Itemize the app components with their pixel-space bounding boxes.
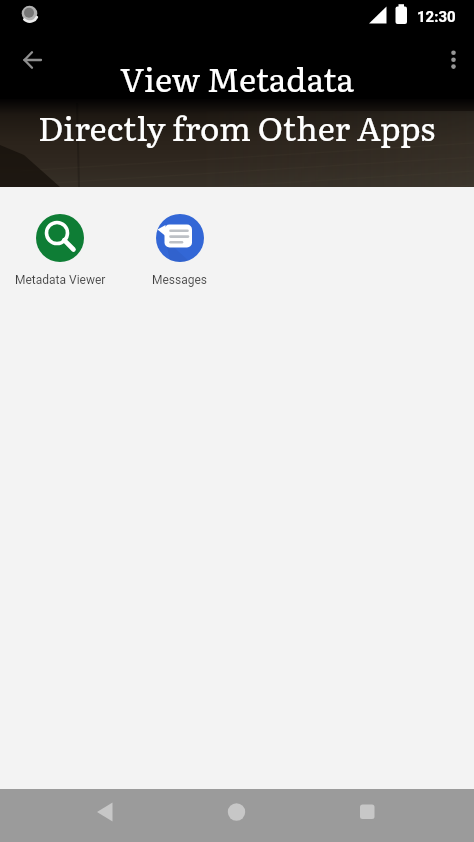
button[interactable] <box>79 789 132 842</box>
button[interactable] <box>342 789 395 842</box>
staticText: Directly from Other Apps <box>38 102 436 151</box>
staticText: Messages <box>152 273 208 287</box>
button[interactable] <box>430 33 474 77</box>
button[interactable]: Metadata Viewer <box>1 214 119 287</box>
button[interactable] <box>0 33 48 81</box>
staticText: Metadata Viewer <box>15 273 106 287</box>
button[interactable] <box>211 789 264 842</box>
staticText: View Metadata <box>120 53 355 102</box>
staticText: 12:30 <box>417 8 456 26</box>
button[interactable]: Messages <box>121 214 239 287</box>
